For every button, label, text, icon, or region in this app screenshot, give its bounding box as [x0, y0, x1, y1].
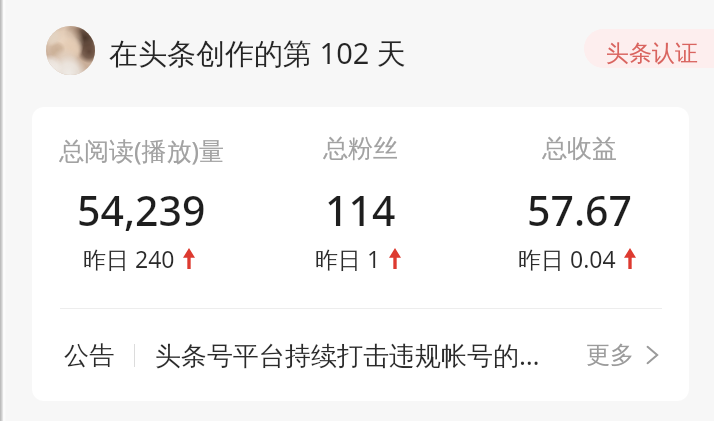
button[interactable]: 在头条创作的第 102 天 — [109, 33, 406, 73]
other: Increase — [389, 248, 401, 269]
staticText: 总粉丝 — [323, 133, 398, 164]
staticText: 头条认证 — [606, 39, 698, 68]
staticText: 昨日 240 — [83, 243, 175, 274]
staticText: 更多 — [586, 340, 634, 370]
staticText: 总收益 — [542, 133, 617, 164]
staticText: 54,239 — [77, 182, 206, 238]
staticText: 头条号平台持续打击违规帐号的… — [155, 337, 540, 373]
button[interactable]: 头条认证 — [584, 29, 714, 68]
staticText: 昨日 0.04 — [518, 243, 616, 274]
button[interactable]: 公告 — [32, 309, 689, 401]
other: Increase — [183, 248, 195, 269]
staticText: 总阅读(播放)量 — [59, 133, 225, 167]
button[interactable]: Profile avatar — [46, 26, 95, 75]
staticText: 57.67 — [527, 182, 632, 238]
staticText: 公告 — [64, 340, 114, 371]
other: Increase — [624, 248, 636, 269]
staticText: 昨日 1 — [315, 243, 381, 274]
other: More announcements — [646, 343, 659, 367]
staticText: 在头条创作的第 102 天 — [109, 33, 406, 73]
button[interactable]: 总收益 — [470, 107, 689, 308]
staticText: 114 — [325, 182, 396, 238]
button[interactable]: 总阅读(播放)量 — [32, 107, 251, 308]
button[interactable]: 总粉丝 — [251, 107, 470, 308]
